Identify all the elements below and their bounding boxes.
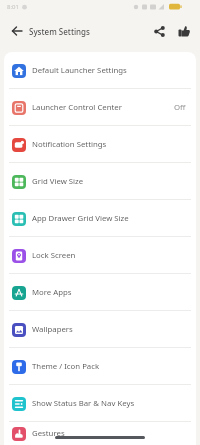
staticText: App Drawer Grid View Size: [32, 213, 129, 224]
staticText: Notification Settings: [32, 139, 107, 150]
staticText: Grid View Size: [32, 176, 84, 187]
staticText: Theme / Icon Pack: [32, 361, 100, 372]
staticText: Gestures: [32, 428, 65, 439]
staticText: System Settings: [29, 26, 90, 37]
button[interactable]: Theme / Icon Pack: [4, 348, 196, 385]
button[interactable]: [151, 23, 167, 39]
button[interactable]: Show Status Bar & Nav Keys: [4, 385, 196, 422]
button[interactable]: More Apps: [4, 274, 196, 311]
button[interactable]: Launcher Control Center: [4, 89, 196, 126]
button[interactable]: [8, 22, 26, 40]
button[interactable]: Gestures: [4, 422, 196, 445]
staticText: Show Status Bar & Nav Keys: [32, 398, 135, 409]
button[interactable]: Lock Screen: [4, 237, 196, 274]
staticText: More Apps: [32, 287, 72, 298]
button[interactable]: Notification Settings: [4, 126, 196, 163]
staticText: Lock Screen: [32, 250, 76, 261]
staticText: Launcher Control Center: [32, 102, 122, 113]
staticText: Default Launcher Settings: [32, 65, 127, 76]
staticText: 8:01: [7, 3, 19, 11]
button[interactable]: Default Launcher Settings: [4, 52, 196, 89]
staticText: Wallpapers: [32, 324, 73, 335]
button[interactable]: App Drawer Grid View Size: [4, 200, 196, 237]
button[interactable]: Grid View Size: [4, 163, 196, 200]
staticText: Off: [174, 102, 186, 113]
button[interactable]: Wallpapers: [4, 311, 196, 348]
button[interactable]: [176, 23, 192, 39]
